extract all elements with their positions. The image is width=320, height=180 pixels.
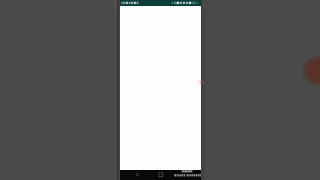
button[interactable]: Back	[133, 171, 142, 180]
button[interactable]: Home	[156, 171, 165, 180]
other: Status bar	[120, 0, 201, 6]
